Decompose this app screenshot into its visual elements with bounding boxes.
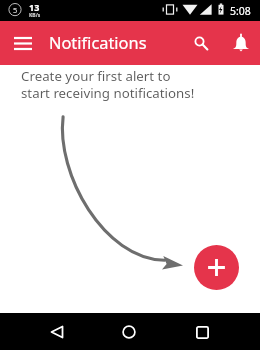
- staticText: 5:08: [230, 4, 251, 18]
- button[interactable]: Alerts: [226, 28, 256, 58]
- staticText: KB/s: [29, 12, 41, 19]
- button[interactable]: Recents: [187, 317, 217, 347]
- staticText: Create your first alert to start receivi…: [21, 67, 195, 102]
- staticText: 5: [13, 5, 18, 15]
- button[interactable]: Menu: [8, 28, 38, 58]
- staticText: 13: [29, 1, 40, 13]
- button[interactable]: Add alert: [194, 245, 239, 290]
- button[interactable]: Search: [185, 28, 215, 58]
- button[interactable]: Home: [114, 317, 144, 347]
- button[interactable]: Back: [42, 317, 72, 347]
- staticText: Notifications: [49, 31, 147, 53]
